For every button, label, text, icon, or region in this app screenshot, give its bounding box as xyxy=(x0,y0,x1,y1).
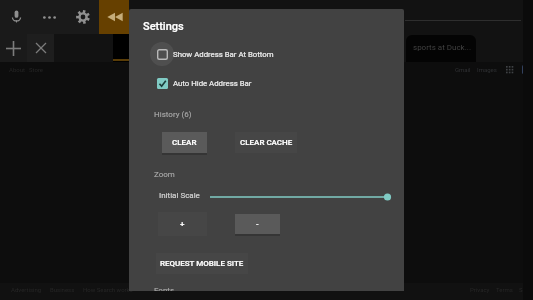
button[interactable]: Settings xyxy=(519,286,533,293)
staticText: Zoom xyxy=(154,170,175,179)
button[interactable]: Google apps xyxy=(506,66,514,74)
staticText: Show Address Bar At Bottom xyxy=(173,50,274,59)
staticText: Settings xyxy=(143,20,184,33)
button[interactable]: Close tab xyxy=(27,34,54,62)
button[interactable]: How Search works xyxy=(83,286,133,293)
staticText: History (6) xyxy=(154,110,192,119)
button[interactable]: Privacy xyxy=(470,286,490,293)
button[interactable]: CLEAR CACHE xyxy=(235,132,297,153)
button[interactable]: Auto Hide Address Bar xyxy=(129,69,404,97)
button[interactable]: Terms xyxy=(496,286,513,293)
button[interactable]: Advertising xyxy=(11,286,42,293)
staticText: Fonts xyxy=(154,286,175,291)
button[interactable]: Initial scale slider xyxy=(206,187,392,203)
button[interactable]: - xyxy=(235,214,280,234)
button[interactable]: REQUEST MOBILE SITE xyxy=(156,253,248,274)
button[interactable]: Back xyxy=(99,0,129,34)
staticText: - xyxy=(256,220,259,229)
staticText: + xyxy=(180,220,185,229)
staticText: REQUEST MOBILE SITE xyxy=(160,259,244,268)
button[interactable]: sports at Duck... xyxy=(406,35,476,62)
button[interactable]: Images xyxy=(477,66,497,73)
button[interactable]: Settings xyxy=(67,0,99,34)
button[interactable]: Voice search xyxy=(0,0,32,34)
staticText: Auto Hide Address Bar xyxy=(173,79,252,88)
button[interactable]: + xyxy=(158,212,207,236)
button[interactable]: Gmail xyxy=(455,66,471,73)
button[interactable]: Store xyxy=(29,66,44,73)
staticText: CLEAR xyxy=(172,138,197,147)
button[interactable]: Business xyxy=(50,286,75,293)
button[interactable]: New tab xyxy=(0,34,27,62)
button[interactable]: More options xyxy=(32,0,67,34)
button[interactable]: About xyxy=(9,66,25,73)
staticText: Initial Scale xyxy=(159,191,200,200)
staticText: sports at Duck... xyxy=(413,43,472,52)
button[interactable]: Sign in xyxy=(522,65,533,74)
button[interactable]: CLEAR xyxy=(162,132,207,153)
staticText: CLEAR CACHE xyxy=(240,138,293,147)
button[interactable]: Show Address Bar At Bottom xyxy=(129,40,404,68)
